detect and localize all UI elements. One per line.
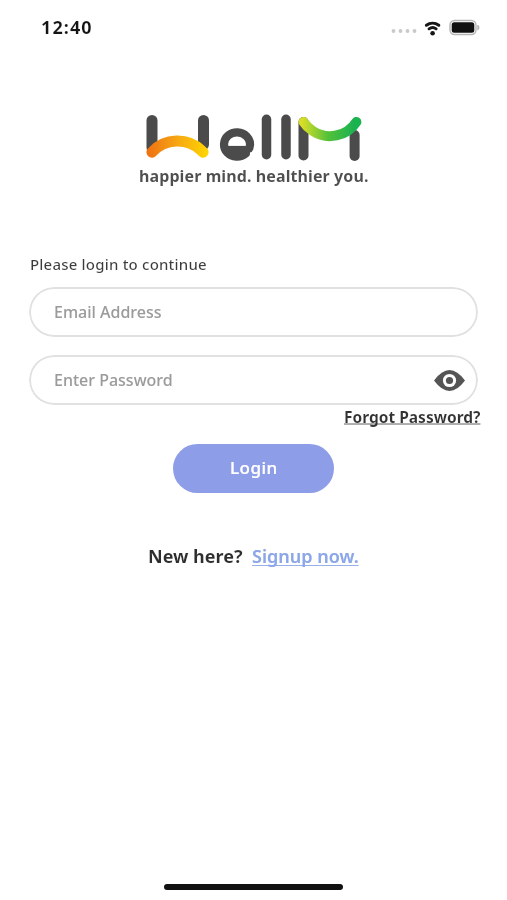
staticText: Email Address (54, 301, 162, 323)
staticText: Enter Password (54, 369, 173, 391)
staticText: 12:40 (41, 15, 93, 40)
button[interactable]: Email Address (29, 287, 478, 337)
staticText: Please login to continue (30, 254, 207, 274)
staticText: New here? (148, 544, 252, 569)
staticText: happier mind. healthier you. (139, 165, 369, 187)
button[interactable]: Enter Password (29, 355, 478, 405)
button[interactable]: Login (173, 444, 334, 493)
button[interactable]: Signup now. (252, 544, 359, 569)
staticText: Login (230, 456, 278, 479)
button[interactable]: Forgot Password? (344, 406, 481, 427)
